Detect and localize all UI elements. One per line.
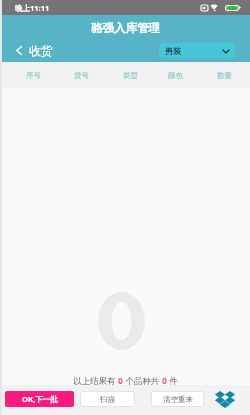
button[interactable]: 扫描 bbox=[80, 391, 135, 407]
staticText: 个品种共 bbox=[123, 375, 162, 387]
staticText: OK,下一批 bbox=[22, 394, 58, 404]
staticText: 晚上11:11 bbox=[15, 3, 50, 13]
staticText: 序号 bbox=[26, 71, 41, 80]
staticText: 件 bbox=[167, 375, 178, 387]
staticText: 数量 bbox=[217, 71, 232, 80]
button[interactable]: OK,下一批 bbox=[5, 391, 74, 407]
staticText: 男装 bbox=[165, 46, 181, 56]
button[interactable]: 男装 bbox=[159, 43, 235, 58]
staticText: 0 bbox=[118, 375, 123, 387]
staticText: 货号 bbox=[74, 71, 89, 80]
staticText: 收货 bbox=[29, 43, 53, 58]
staticText: 以上结果有 bbox=[73, 375, 118, 387]
button[interactable]: 收货 bbox=[16, 41, 53, 59]
staticText: 骆强入库管理 bbox=[91, 21, 160, 35]
staticText: 0 bbox=[162, 375, 167, 387]
staticText: 类型 bbox=[123, 71, 138, 80]
staticText: 扫描 bbox=[100, 395, 115, 404]
button[interactable]: Dropbox sync bbox=[212, 388, 237, 411]
staticText: 100 bbox=[228, 6, 236, 10]
button[interactable]: 清空重来 bbox=[151, 391, 204, 407]
staticText: 颜色 bbox=[168, 71, 183, 80]
staticText: 清空重来 bbox=[163, 395, 193, 404]
